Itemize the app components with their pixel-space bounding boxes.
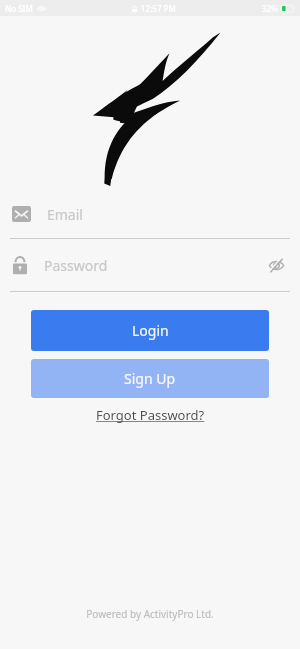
staticText: Email [47, 205, 83, 224]
button[interactable]: Sign Up [31, 359, 269, 398]
staticText: 32% [262, 3, 278, 14]
staticText: Password [44, 256, 108, 275]
button[interactable]: Email [0, 190, 300, 238]
button[interactable]: Forgot Password? [88, 404, 213, 426]
staticText: 12:57 PM [141, 3, 176, 14]
staticText: Powered by ActivityPro Ltd. [86, 607, 214, 621]
button[interactable]: Password [0, 239, 300, 291]
staticText: No SIM [5, 3, 33, 14]
staticText: Login [132, 321, 169, 340]
button[interactable]: Login [31, 310, 269, 351]
staticText: Forgot Password? [96, 406, 205, 424]
staticText: Sign Up [124, 369, 176, 388]
button[interactable]: Show password [264, 253, 288, 277]
